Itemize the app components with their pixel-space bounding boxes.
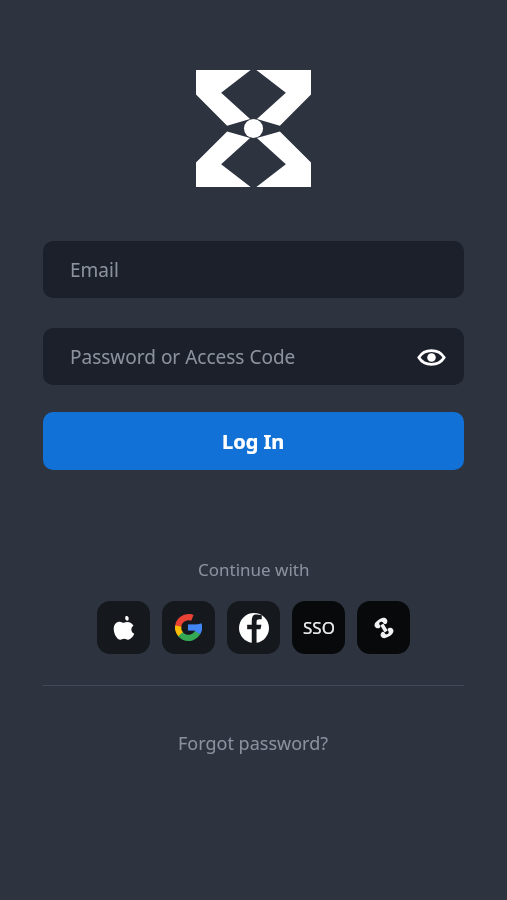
staticText: Continue with <box>198 558 310 581</box>
button[interactable]: Continue with phone <box>357 601 410 654</box>
button[interactable]: Forgot password? <box>166 724 341 763</box>
button[interactable]: Continue with Apple <box>97 601 150 654</box>
button[interactable]: Continue with Google <box>162 601 215 654</box>
staticText: Email <box>70 257 119 283</box>
button[interactable]: Log In <box>43 412 464 470</box>
staticText: Password or Access Code <box>70 344 296 370</box>
button[interactable]: Password or Access Code <box>43 328 464 385</box>
button[interactable]: Continue with Facebook <box>227 601 280 654</box>
button[interactable]: Continue with SSO <box>292 601 345 654</box>
staticText: SSO <box>303 616 335 639</box>
staticText: Log In <box>222 428 285 455</box>
button[interactable]: Email <box>43 241 464 298</box>
button[interactable]: Show password <box>410 336 452 378</box>
staticText: Forgot password? <box>178 731 329 756</box>
